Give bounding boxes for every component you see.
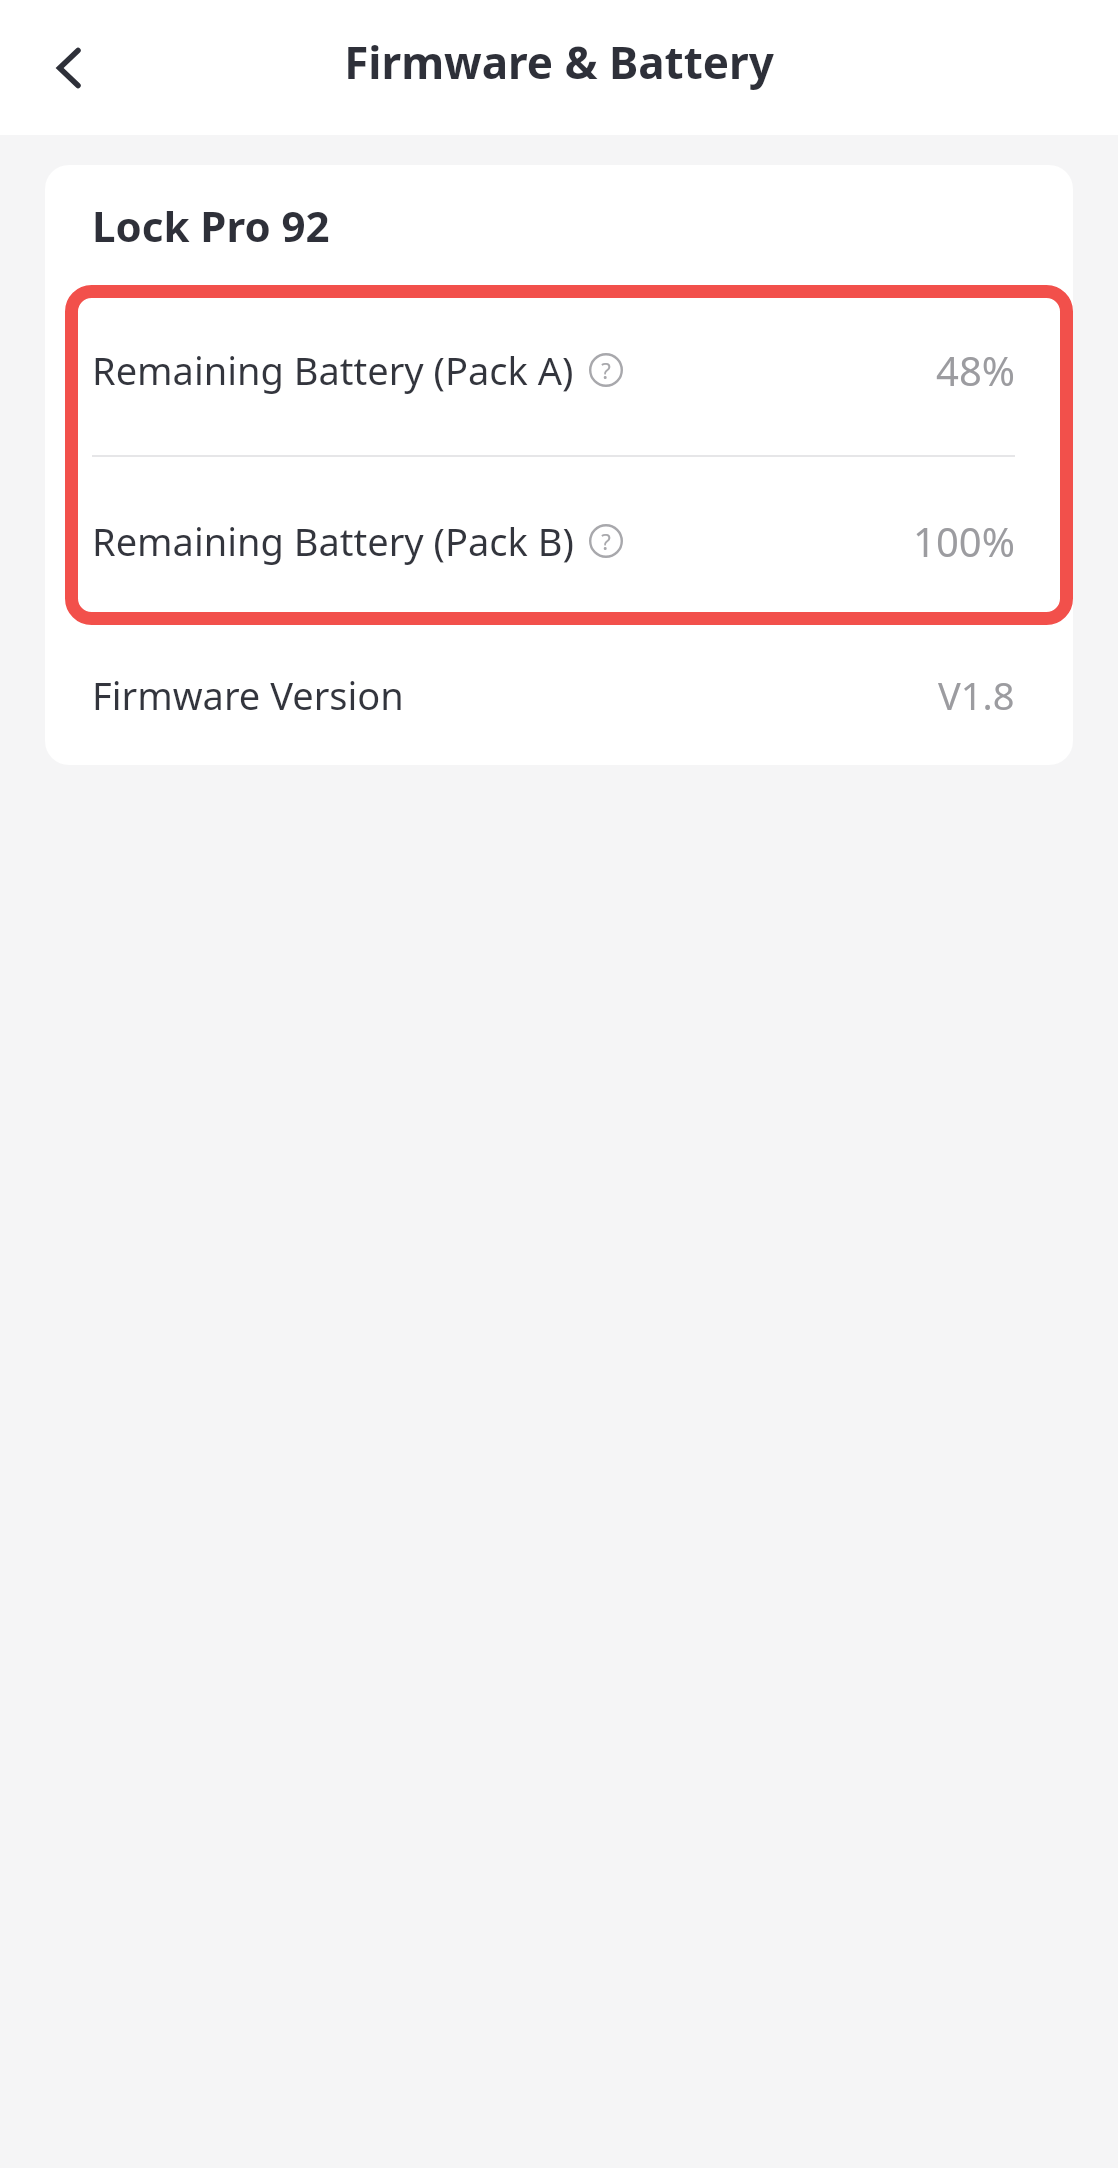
staticText: ? <box>601 355 611 385</box>
button[interactable]: Firmware Version <box>45 625 1073 765</box>
staticText: ? <box>601 526 611 556</box>
staticText: 48% <box>936 343 1015 397</box>
staticText: V1.8 <box>938 669 1015 721</box>
staticText: 100% <box>913 514 1015 568</box>
staticText: Lock Pro 92 <box>92 197 330 254</box>
staticText: Firmware & Battery <box>344 32 774 92</box>
button[interactable]: Back <box>22 20 118 116</box>
button[interactable]: Remaining Battery (Pack B) <box>45 457 1073 625</box>
staticText: Firmware Version <box>92 669 404 721</box>
staticText: Remaining Battery (Pack A) <box>92 344 574 396</box>
button[interactable]: Help <box>588 352 624 388</box>
staticText: Remaining Battery (Pack B) <box>92 515 574 567</box>
button[interactable]: Help <box>588 523 624 559</box>
button[interactable]: Remaining Battery (Pack A) <box>45 285 1073 455</box>
